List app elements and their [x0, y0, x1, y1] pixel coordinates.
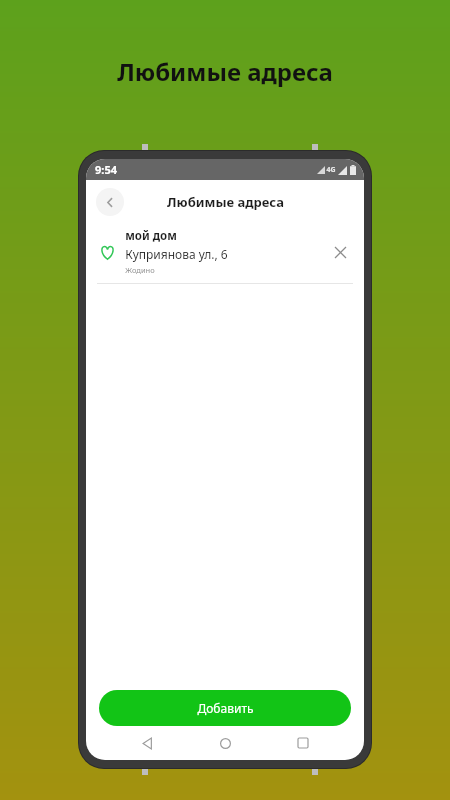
staticText: 4G [326, 165, 336, 175]
staticText: Куприянова ул., 6 [125, 246, 228, 262]
button[interactable]: Remove address [327, 239, 353, 265]
staticText: Любимые адреса [117, 55, 333, 88]
button[interactable]: Back [96, 188, 124, 216]
button[interactable]: Recent apps [286, 726, 320, 760]
staticText: Любимые адреса [167, 193, 284, 211]
staticText: мой дом [125, 228, 177, 244]
staticText: Жодино [125, 265, 155, 275]
button[interactable]: Back [130, 726, 164, 760]
button[interactable]: Добавить [99, 690, 351, 726]
button[interactable]: Home [208, 726, 242, 760]
staticText: Добавить [197, 700, 254, 716]
staticText: 9:54 [95, 162, 117, 177]
button[interactable]: мой дом [86, 224, 364, 283]
